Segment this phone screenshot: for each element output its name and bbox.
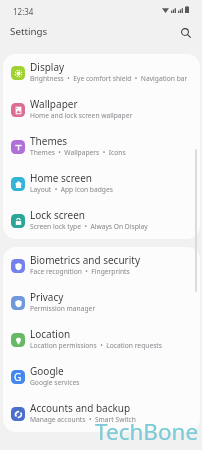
button[interactable]: Home screen — [3, 165, 200, 202]
staticText: Location permissions • Location requests — [30, 341, 162, 350]
staticText: Screen lock type • Always On Display — [30, 222, 148, 231]
staticText: Brightness • Eye comfort shield • Naviga… — [30, 74, 188, 83]
button[interactable]: Wallpaper — [3, 91, 200, 128]
staticText: Themes • Wallpapers • Icons — [30, 148, 126, 157]
staticText: G — [14, 370, 22, 384]
staticText: Permission manager — [30, 304, 96, 313]
staticText: Home screen — [30, 171, 93, 185]
staticText: Layout • App icon badges — [30, 185, 113, 194]
staticText: Display — [30, 60, 65, 74]
staticText: Location — [30, 327, 71, 341]
staticText: Wallpaper — [30, 97, 78, 111]
staticText: Home and lock screen wallpaper — [30, 111, 133, 120]
staticText: Settings — [10, 25, 48, 38]
staticText: Themes — [30, 134, 68, 148]
button[interactable]: Accounts and backup — [3, 395, 200, 432]
staticText: Google — [30, 364, 64, 378]
staticText: TechBone — [95, 416, 199, 447]
staticText: Privacy — [30, 290, 64, 304]
staticText: Lock screen — [30, 208, 86, 222]
staticText: Face recognition • Fingerprints — [30, 267, 130, 276]
staticText: Google services — [30, 378, 80, 387]
button[interactable]: Privacy — [3, 284, 200, 321]
button[interactable]: Location — [3, 321, 200, 358]
button[interactable]: Display — [3, 54, 200, 91]
staticText: Biometrics and security — [30, 253, 140, 267]
button[interactable]: Lock screen — [3, 202, 200, 239]
staticText: Manage accounts • Smart Switch — [30, 415, 136, 424]
button[interactable]: Themes — [3, 128, 200, 165]
staticText: 12:34 — [13, 6, 34, 17]
button[interactable]: Biometrics and security — [3, 247, 200, 284]
button[interactable]: Search — [175, 22, 197, 44]
staticText: Accounts and backup — [30, 401, 131, 415]
button[interactable]: G — [3, 358, 200, 395]
